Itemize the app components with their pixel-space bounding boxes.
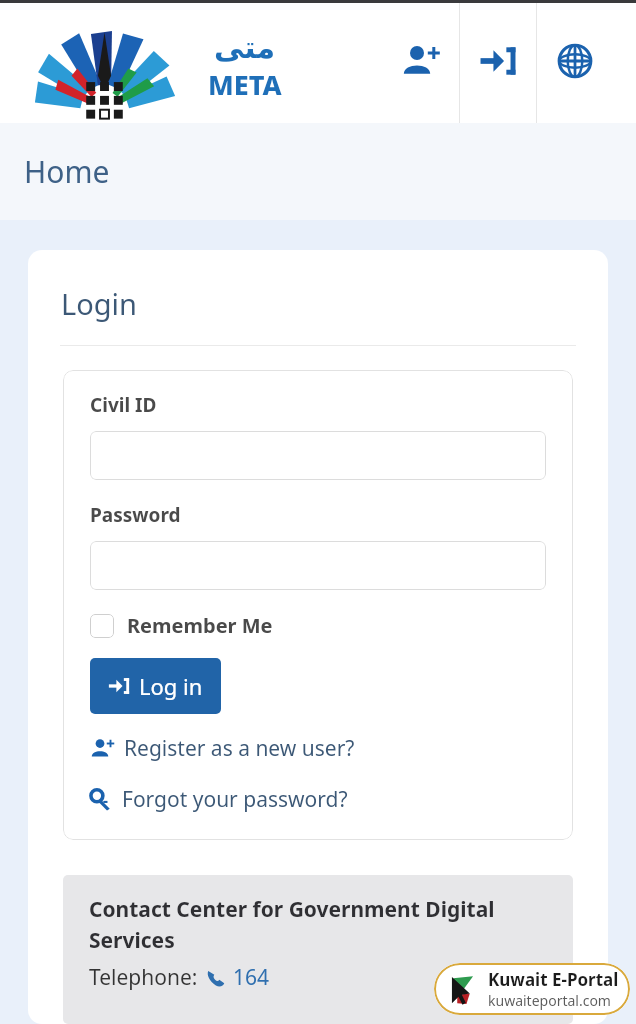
button[interactable]: Log in xyxy=(90,658,221,714)
staticText: Log in xyxy=(139,671,203,701)
button[interactable]: Home xyxy=(24,151,110,192)
button[interactable] xyxy=(90,541,546,590)
button[interactable]: Register as a new user? xyxy=(90,734,355,763)
staticText: META xyxy=(208,66,282,103)
staticText: Forgot your password? xyxy=(122,785,348,814)
button[interactable]: Change language xyxy=(546,32,604,90)
staticText: Password xyxy=(90,502,181,528)
staticText: Login xyxy=(61,284,137,323)
button[interactable]: Sign in xyxy=(469,32,527,90)
staticText: kuwaiteportal.com xyxy=(488,991,611,1010)
button[interactable] xyxy=(90,431,546,480)
staticText: Remember Me xyxy=(127,612,273,639)
button[interactable]: Register xyxy=(392,32,450,90)
button[interactable]: Remember Me xyxy=(90,612,273,639)
staticText: 164 xyxy=(233,963,270,992)
staticText: Contact Center for Government Digital Se… xyxy=(89,895,547,954)
staticText: متى xyxy=(214,30,276,65)
staticText: Civil ID xyxy=(90,392,157,418)
button[interactable]: Forgot your password? xyxy=(90,785,348,814)
staticText: Telephone: xyxy=(89,963,198,992)
staticText: Kuwait E-Portal xyxy=(488,968,619,991)
staticText: Register as a new user? xyxy=(124,734,355,763)
